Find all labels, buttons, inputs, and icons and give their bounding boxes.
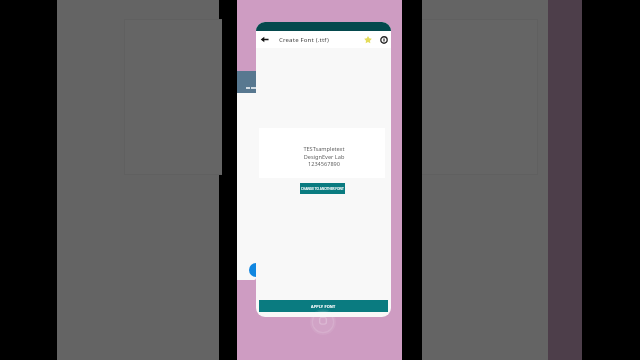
button[interactable]: Info [376,31,391,48]
button[interactable]: CHANGE TO ANOTHER FONT [300,183,345,194]
staticText: CHANGE TO ANOTHER FONT [301,187,344,191]
staticText: APPLY FONT [311,304,336,309]
button[interactable]: APPLY FONT [259,300,388,312]
staticText: TESTsampletext DesignEver Lab 1234567890 [303,145,345,167]
button[interactable]: Favorite [359,31,376,48]
staticText: Create Font (.ttf) [279,36,329,44]
button[interactable]: Back [256,31,273,48]
